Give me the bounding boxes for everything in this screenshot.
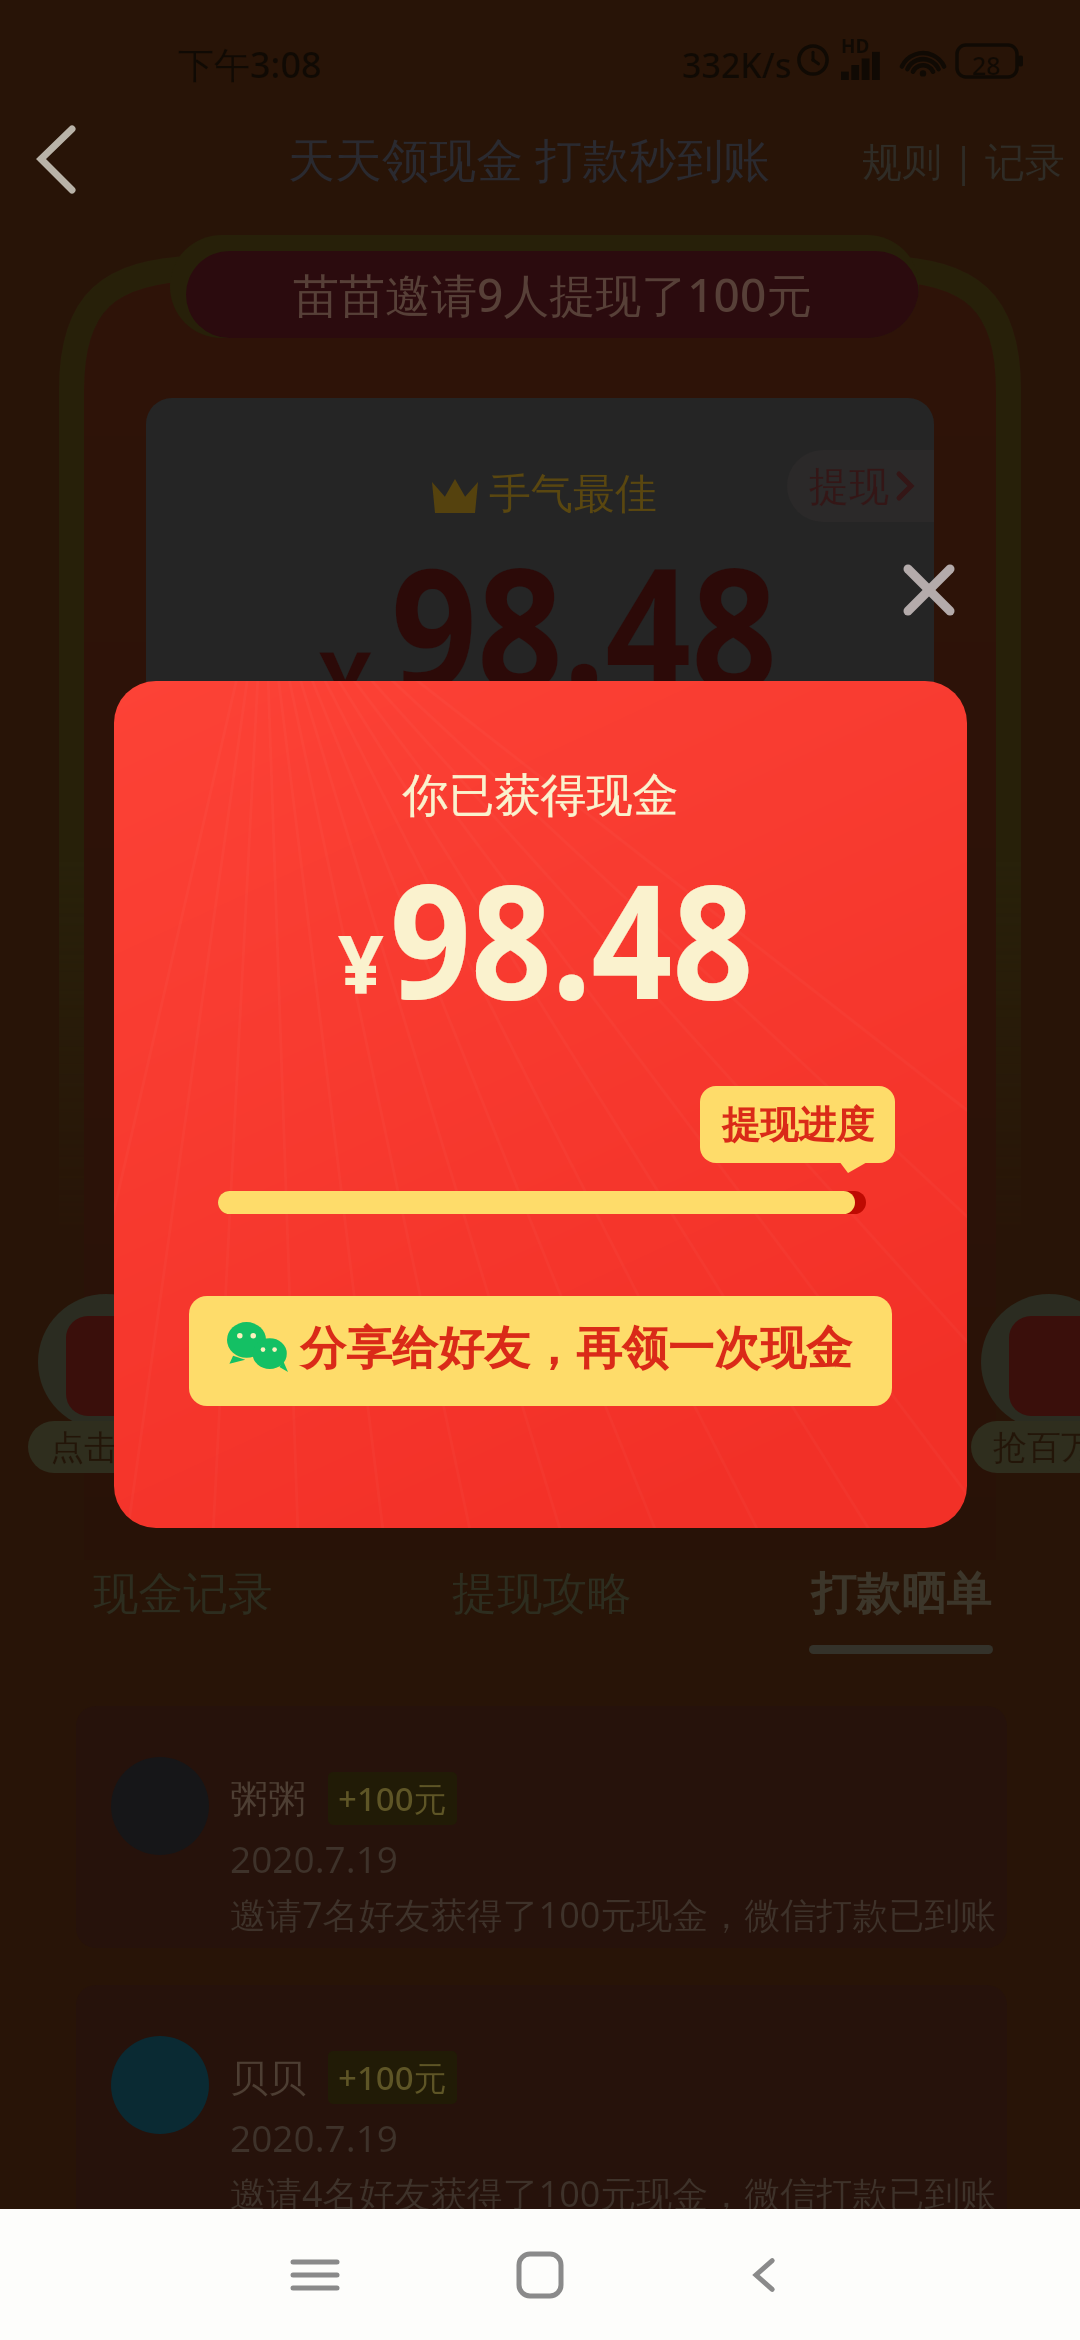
staticText: ¥ — [319, 620, 372, 745]
staticText: 苗苗邀请9人提现了100元 — [293, 263, 813, 326]
staticText: +100元 — [338, 1776, 447, 1821]
button[interactable]: Close — [899, 560, 959, 620]
button[interactable]: Back — [14, 114, 98, 198]
staticText: 28 — [972, 48, 1001, 82]
staticText: +100元 — [338, 2055, 447, 2100]
staticText: 提现 — [809, 461, 889, 511]
button[interactable]: 提现 — [787, 450, 934, 522]
button[interactable]: 点击领 — [28, 1421, 174, 1473]
staticText: HD — [841, 33, 870, 59]
staticText: 现金记录 — [93, 1566, 273, 1623]
staticText: 粥粥 — [230, 1775, 306, 1823]
staticText: 打款晒单 — [811, 1566, 991, 1623]
staticText: 332K/s — [682, 42, 792, 88]
staticText: 分享给好友，再领一次现金 — [300, 1320, 852, 1378]
staticText: 提现攻略 — [452, 1566, 632, 1623]
button[interactable]: 打款晒单 — [721, 1566, 1080, 1676]
button[interactable] — [38, 1294, 174, 1430]
staticText: 贝贝 — [230, 2054, 306, 2102]
button[interactable]: Home — [495, 2230, 585, 2320]
staticText: 下午3:08 — [178, 40, 322, 89]
button[interactable]: 苗苗邀请9人提现了100元 — [170, 235, 919, 338]
staticText: 98.48 — [390, 830, 753, 1045]
staticText: 天天领现金 打款秒到账 — [288, 127, 771, 191]
button[interactable]: 提现攻略 — [362, 1566, 721, 1676]
button[interactable] — [981, 1294, 1080, 1430]
button[interactable]: 分享给好友，再领一次现金 — [189, 1296, 892, 1406]
button[interactable]: 抢百万 — [971, 1421, 1080, 1473]
staticText: 手气最佳 — [489, 468, 657, 521]
button[interactable]: 现金记录 — [3, 1566, 362, 1676]
staticText: ¥ — [338, 908, 384, 1017]
staticText: 你已获得现金 — [114, 767, 967, 825]
button[interactable]: Recents — [270, 2230, 360, 2320]
staticText: 规则 | 记录 — [862, 133, 1065, 188]
staticText: 2020.7.19 — [230, 2112, 398, 2162]
staticText: 98.48 — [391, 510, 778, 739]
staticText: 邀请7名好友获得了100元现金，微信打款已到账 — [230, 1890, 997, 1939]
staticText: 2020.7.19 — [230, 1833, 398, 1883]
button[interactable]: 粥粥 — [76, 1706, 1007, 1948]
staticText: 抢百万 — [993, 1426, 1080, 1469]
staticText: 点击领 — [50, 1426, 152, 1469]
staticText: 邀请4名好友获得了100元现金，微信打款已到账 — [230, 2169, 997, 2218]
button[interactable]: 贝贝 — [76, 1985, 1007, 2227]
staticText: 提现进度 — [722, 1101, 874, 1149]
button[interactable]: Back — [720, 2230, 810, 2320]
